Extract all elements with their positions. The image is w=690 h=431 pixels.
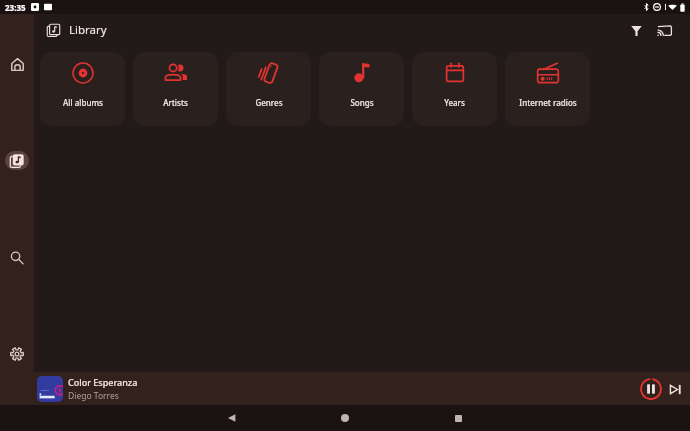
staticText: Years — [444, 97, 465, 108]
button[interactable]: Library — [42, 19, 64, 41]
button[interactable]: Genres — [226, 52, 311, 126]
staticText: Diego Torres — [68, 390, 119, 402]
button[interactable]: Songs — [319, 52, 404, 126]
button[interactable]: Cast — [652, 18, 676, 42]
button[interactable]: Recents — [445, 405, 471, 431]
staticText: 23:35 — [5, 2, 26, 13]
button[interactable]: Color Esperanza — [34, 372, 690, 405]
button[interactable]: Back — [219, 405, 245, 431]
button[interactable]: Library — [5, 151, 29, 170]
button[interactable]: Home — [332, 405, 358, 431]
staticText: Artists — [163, 97, 188, 108]
button[interactable]: Years — [412, 52, 497, 126]
button[interactable]: Home — [3, 50, 31, 78]
button[interactable]: Next — [664, 378, 686, 400]
button[interactable]: Internet radios — [505, 52, 590, 126]
staticText: Genres — [255, 97, 283, 108]
staticText: All albums — [63, 97, 103, 108]
button[interactable]: Settings — [3, 340, 31, 368]
staticText: Library — [69, 22, 107, 38]
button[interactable]: Search — [3, 244, 31, 272]
staticText: Songs — [350, 97, 374, 108]
staticText: Internet radios — [519, 97, 577, 108]
staticText: Color Esperanza — [68, 376, 138, 388]
button[interactable]: Filter — [624, 18, 648, 42]
button[interactable]: Artists — [133, 52, 218, 126]
button[interactable]: All albums — [40, 52, 125, 126]
button[interactable]: Pause — [638, 376, 664, 402]
